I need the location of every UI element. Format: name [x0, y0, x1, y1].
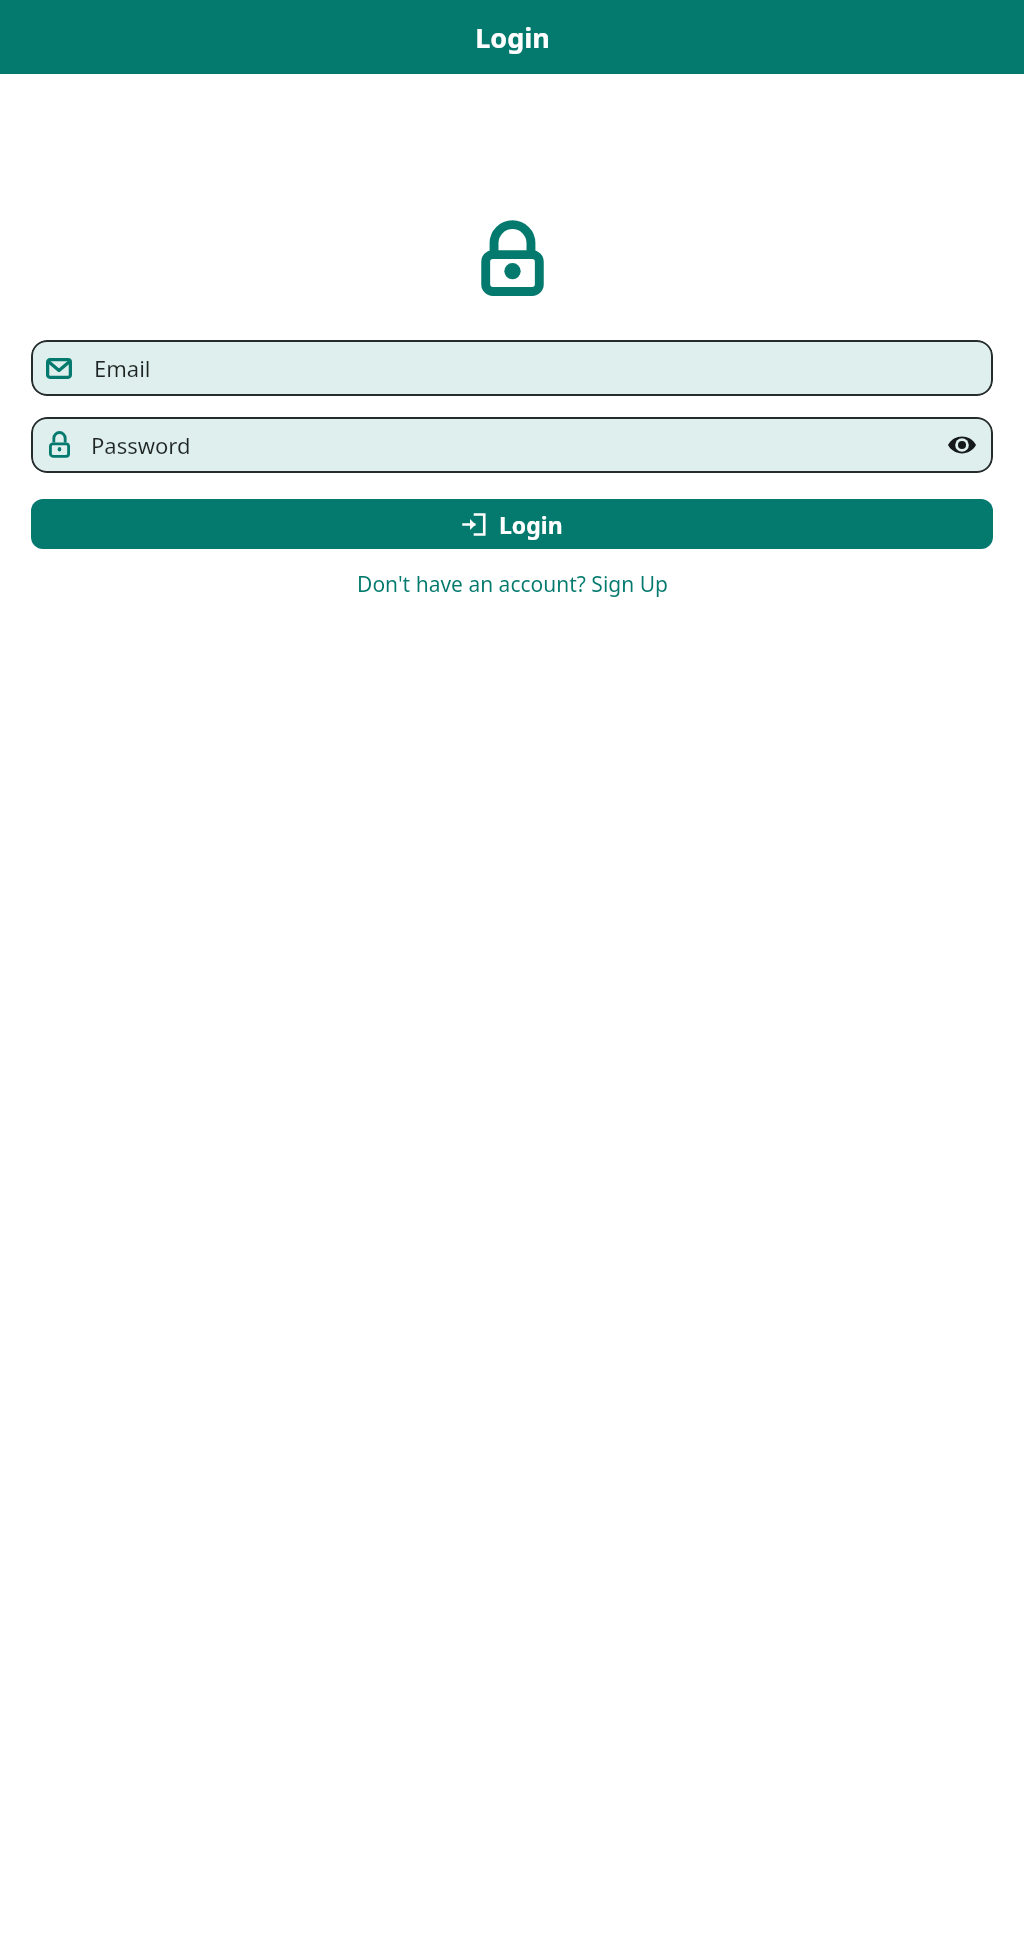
staticText: Email: [94, 353, 151, 383]
staticText: Don't have an account? Sign Up: [357, 570, 668, 599]
button[interactable]: Email: [31, 340, 993, 396]
staticText: Login: [475, 19, 550, 56]
button[interactable]: Show password: [941, 424, 983, 466]
staticText: Login: [499, 509, 563, 540]
button[interactable]: Login: [31, 499, 993, 549]
staticText: Password: [91, 430, 191, 460]
button[interactable]: Password: [31, 417, 993, 473]
button[interactable]: Don't have an account? Sign Up: [0, 561, 1024, 608]
